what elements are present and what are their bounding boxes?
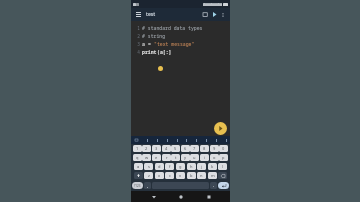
staticText: 7 [193, 146, 196, 151]
staticText: f [169, 164, 171, 169]
staticText: o [213, 155, 216, 160]
button[interactable]: c [165, 172, 174, 179]
staticText: 4 [134, 49, 140, 55]
button[interactable]: p [219, 154, 228, 161]
staticText: 8 [203, 146, 206, 151]
button[interactable]: j [197, 163, 206, 170]
staticText: a [142, 41, 145, 48]
staticText: 4 [165, 146, 168, 151]
button[interactable]: More options [219, 11, 227, 19]
button[interactable]: ?123 [132, 182, 143, 189]
button[interactable]: t [171, 154, 180, 161]
button[interactable]: Period [210, 182, 217, 189]
staticText: # string [142, 33, 166, 40]
button[interactable]: 1 [133, 145, 142, 152]
button[interactable]: g [176, 163, 185, 170]
button[interactable]: Recents [203, 191, 214, 202]
button[interactable]: Suggestion [155, 139, 159, 142]
button[interactable]: o [210, 154, 219, 161]
button[interactable]: Run code [214, 122, 227, 135]
button[interactable]: Suggestion [175, 139, 179, 142]
staticText: s [148, 164, 150, 169]
staticText: r [166, 155, 168, 160]
staticText: 1 [136, 146, 139, 151]
button[interactable]: Home [175, 191, 186, 202]
staticText: c [169, 173, 171, 178]
button[interactable]: a [134, 163, 143, 170]
button[interactable]: n [197, 172, 206, 179]
button[interactable]: v [176, 172, 185, 179]
button[interactable]: z [144, 172, 153, 179]
button[interactable]: w [142, 154, 151, 161]
staticText: 5 [174, 146, 177, 151]
staticText: b [190, 173, 193, 178]
staticText: (a[:] [157, 49, 172, 56]
staticText: k [211, 164, 214, 169]
button[interactable]: l [218, 163, 227, 170]
button[interactable]: q [133, 154, 142, 161]
staticText: , [147, 183, 149, 188]
button[interactable]: Suggestion [204, 139, 208, 142]
button[interactable]: x [155, 172, 164, 179]
staticText: j [201, 164, 203, 169]
button[interactable]: 3 [152, 145, 161, 152]
button[interactable]: u [190, 154, 199, 161]
button[interactable]: i [200, 154, 209, 161]
button[interactable]: Keyboard settings [133, 137, 139, 143]
button[interactable]: Back [148, 191, 159, 202]
button[interactable]: y [181, 154, 190, 161]
button[interactable]: 6 [181, 145, 190, 152]
button[interactable]: Suggestion [184, 139, 188, 142]
button[interactable]: Shift [134, 172, 143, 179]
staticText: a [137, 164, 140, 169]
staticText: z [148, 173, 150, 178]
staticText: 2 [145, 146, 148, 151]
staticText: g [179, 164, 182, 169]
staticText: x [158, 173, 161, 178]
staticText: "text message" [154, 41, 195, 48]
button[interactable]: 4 [162, 145, 171, 152]
button[interactable]: e [152, 154, 161, 161]
button[interactable]: 2 [142, 145, 151, 152]
button[interactable]: 0 [219, 145, 228, 152]
staticText: d [158, 164, 161, 169]
button[interactable]: b [187, 172, 196, 179]
staticText: 2 [134, 33, 140, 39]
staticText: y [184, 155, 187, 160]
button[interactable]: h [187, 163, 196, 170]
button[interactable]: r [162, 154, 171, 161]
button[interactable]: Run [210, 10, 219, 19]
button[interactable]: Suggestion [165, 139, 169, 142]
staticText: m [211, 173, 215, 178]
button[interactable]: d [155, 163, 164, 170]
staticText: print [142, 49, 157, 56]
button[interactable]: Tabs [201, 10, 210, 19]
staticText: t [175, 155, 177, 160]
button[interactable]: f [165, 163, 174, 170]
staticText: 6 [184, 146, 187, 151]
button[interactable]: Suggestion [214, 139, 218, 142]
staticText: n [200, 173, 203, 178]
staticText: v [179, 173, 182, 178]
button[interactable]: 9 [210, 145, 219, 152]
button[interactable]: k [208, 163, 217, 170]
button[interactable]: Suggestion [224, 139, 228, 142]
button[interactable]: 7 [190, 145, 199, 152]
button[interactable]: Comma [144, 182, 151, 189]
staticText: 3 [134, 41, 140, 47]
button[interactable]: 5 [171, 145, 180, 152]
button[interactable]: Enter [218, 182, 229, 189]
button[interactable]: Suggestion [145, 139, 149, 142]
staticText: 3 [155, 146, 158, 151]
button[interactable]: m [208, 172, 217, 179]
button[interactable]: s [144, 163, 153, 170]
button[interactable]: Suggestion [194, 139, 198, 142]
button[interactable]: Menu [134, 10, 143, 19]
button[interactable]: Backspace [218, 172, 227, 179]
staticText: q [136, 155, 139, 160]
staticText: test [146, 11, 156, 18]
button[interactable]: 8 [200, 145, 209, 152]
staticText: u [193, 155, 196, 160]
staticText: h [190, 164, 193, 169]
